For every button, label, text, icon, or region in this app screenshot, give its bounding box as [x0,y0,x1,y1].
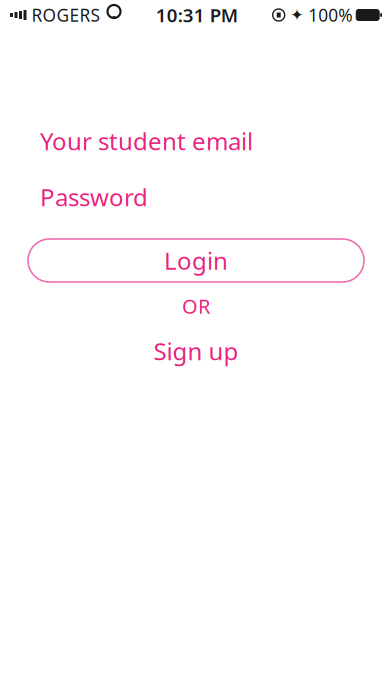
staticText: 10:31 PM [156,3,238,27]
button[interactable]: Login [28,239,364,282]
staticText: Sign up [153,335,238,367]
staticText: ROGERS [31,3,100,26]
staticText: Your student email [40,125,253,157]
button[interactable]: Sign up [153,338,238,364]
staticText: 100% [308,3,352,26]
staticText: Login [164,245,228,276]
staticText: Password [40,181,148,213]
staticText: ✦ [290,6,303,24]
staticText: OR [182,293,210,319]
